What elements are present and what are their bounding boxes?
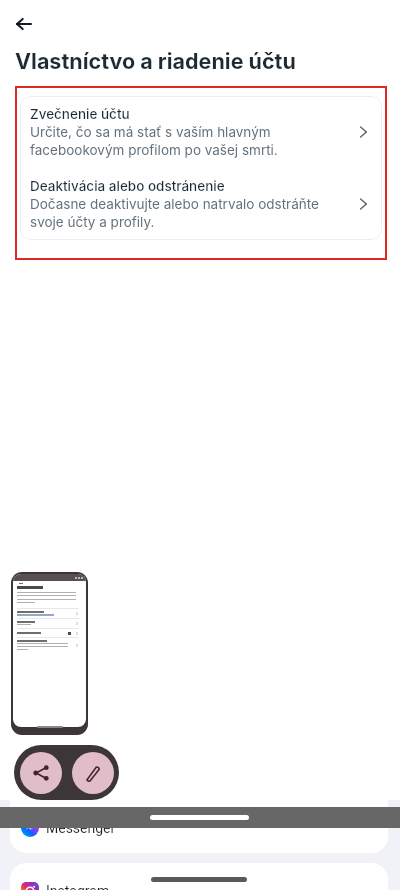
button[interactable]: Edit (72, 752, 114, 794)
button[interactable]: Messenger (10, 800, 388, 853)
button[interactable]: Back (11, 11, 37, 37)
staticText: Messenger (46, 820, 116, 836)
button[interactable]: Deaktivácia alebo odstránenie (20, 168, 382, 240)
button[interactable]: Zvečnenie účtu (20, 96, 382, 168)
button[interactable]: Share (20, 752, 62, 794)
staticText: Deaktivácia alebo odstránenie (30, 178, 225, 194)
staticText: Zvečnenie účtu (30, 106, 130, 122)
staticText: Určite, čo sa má stať s vaším hlavným fa… (30, 124, 278, 158)
button[interactable]: Instagram (10, 863, 388, 890)
staticText: Dočasne deaktivujte alebo natrvalo odstr… (30, 196, 319, 230)
staticText: Instagram (46, 883, 110, 890)
staticText: Vlastníctvo a riadenie účtu (15, 48, 296, 74)
